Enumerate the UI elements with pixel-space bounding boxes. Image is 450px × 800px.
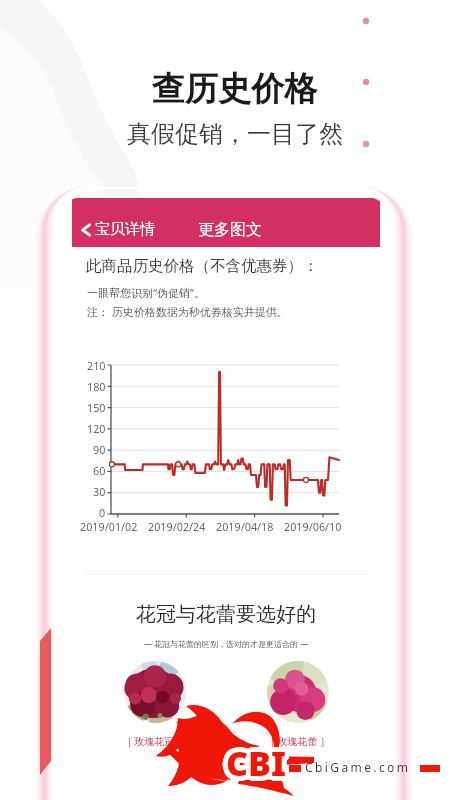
staticText: CBI bbox=[223, 739, 283, 785]
staticText: CBI bbox=[229, 744, 289, 790]
staticText: CBI bbox=[227, 741, 287, 787]
staticText: CBI bbox=[224, 737, 284, 783]
staticText: 0 bbox=[99, 505, 106, 520]
staticText: CBI bbox=[225, 742, 285, 788]
staticText: CBI bbox=[227, 737, 287, 783]
staticText: 更多图文 bbox=[198, 220, 262, 240]
staticText: 210 bbox=[87, 358, 106, 373]
staticText: CBI bbox=[222, 739, 282, 785]
staticText: CBI bbox=[226, 744, 286, 790]
staticText: CBI bbox=[225, 744, 285, 790]
staticText: CBI bbox=[228, 738, 288, 784]
staticText: 2019/04/18 bbox=[216, 519, 274, 534]
staticText: CBI bbox=[228, 741, 288, 787]
staticText: CBI bbox=[222, 743, 282, 789]
staticText: CBI bbox=[224, 736, 284, 782]
staticText: CBI bbox=[222, 742, 282, 788]
staticText: CBI bbox=[229, 737, 289, 783]
staticText: CBI bbox=[225, 739, 285, 785]
staticText: CBI bbox=[229, 738, 289, 784]
staticText: CBI bbox=[228, 742, 288, 788]
staticText: 2019/06/10 bbox=[284, 519, 342, 534]
staticText: ［ 玫瑰花冠 ］ bbox=[122, 734, 188, 748]
staticText: CBI bbox=[230, 742, 290, 788]
staticText: CBI bbox=[225, 737, 285, 783]
staticText: CBI bbox=[230, 743, 290, 789]
staticText: CBI bbox=[226, 738, 286, 784]
staticText: CBI bbox=[229, 743, 289, 789]
staticText: CBI bbox=[228, 737, 288, 783]
staticText: CBI bbox=[230, 738, 290, 784]
staticText: 2019/02/24 bbox=[148, 519, 206, 534]
staticText: CbiGame.com bbox=[305, 759, 411, 775]
staticText: CBI bbox=[226, 742, 286, 788]
staticText: 查历史价格 bbox=[152, 68, 317, 110]
staticText: CBI bbox=[223, 743, 283, 789]
staticText: 30 bbox=[93, 484, 106, 499]
staticText: CBI bbox=[226, 735, 286, 781]
staticText: CBI bbox=[224, 739, 284, 785]
staticText: CBI bbox=[230, 737, 290, 783]
staticText: 150 bbox=[87, 400, 106, 415]
staticText: ［ 玫瑰花蕾 ］ bbox=[265, 734, 331, 748]
staticText: CBI bbox=[225, 738, 285, 784]
other: Back bbox=[79, 223, 93, 237]
button[interactable]: Back bbox=[72, 212, 380, 247]
staticText: CBI bbox=[226, 737, 286, 783]
staticText: 真假促销，一目了然 bbox=[127, 119, 343, 149]
staticText: CBI bbox=[223, 744, 283, 790]
staticText: CBI bbox=[226, 743, 286, 789]
staticText: CBI bbox=[230, 739, 290, 785]
staticText: CBI bbox=[223, 736, 283, 782]
staticText: 此商品历史价格（不含优惠券）： bbox=[86, 256, 319, 276]
staticText: CBI bbox=[227, 739, 287, 785]
staticText: CBI bbox=[227, 738, 287, 784]
staticText: CBI bbox=[222, 741, 282, 787]
staticText: CBI bbox=[224, 743, 284, 789]
staticText: 120 bbox=[87, 421, 106, 436]
staticText: CBI bbox=[229, 742, 289, 788]
staticText: CBI bbox=[222, 737, 282, 783]
staticText: 一眼帮您识别“伪促销”。 bbox=[87, 285, 205, 300]
staticText: CBI bbox=[223, 740, 283, 786]
staticText: CBI bbox=[225, 743, 285, 789]
staticText: CBI bbox=[227, 742, 287, 788]
staticText: CBI bbox=[228, 744, 288, 790]
staticText: CBI bbox=[223, 738, 283, 784]
staticText: CBI bbox=[227, 736, 287, 782]
staticText: CBI bbox=[227, 743, 287, 789]
staticText: 宝贝详情 bbox=[95, 220, 155, 239]
staticText: CBI bbox=[223, 737, 283, 783]
staticText: 180 bbox=[87, 379, 106, 394]
staticText: 花冠与花蕾要选好的 bbox=[136, 602, 316, 627]
staticText: CBI bbox=[222, 740, 282, 786]
staticText: CBI bbox=[229, 741, 289, 787]
staticText: CBI bbox=[228, 740, 288, 786]
staticText: 注： 历史价格数据为秒优券核实并提供。 bbox=[87, 304, 288, 319]
staticText: CBI bbox=[230, 741, 290, 787]
staticText: CBI bbox=[224, 742, 284, 788]
staticText: CBI bbox=[229, 736, 289, 782]
staticText: CBI bbox=[226, 745, 286, 791]
staticText: 2019/01/02 bbox=[80, 519, 138, 534]
staticText: CBI bbox=[229, 740, 289, 786]
staticText: CBI bbox=[225, 736, 285, 782]
staticText: — 花冠与花蕾的区别，选对的才是更适合的 — bbox=[144, 638, 309, 649]
staticText: CBI bbox=[230, 740, 290, 786]
staticText: CBI bbox=[226, 736, 286, 782]
staticText: CBI bbox=[221, 740, 281, 786]
staticText: CBI bbox=[225, 740, 285, 786]
staticText: CBI bbox=[224, 738, 284, 784]
staticText: CBI bbox=[224, 741, 284, 787]
staticText: CBI bbox=[224, 740, 284, 786]
staticText: CBI bbox=[228, 739, 288, 785]
staticText: CBI bbox=[222, 738, 282, 784]
staticText: CBI bbox=[229, 739, 289, 785]
staticText: CBI bbox=[227, 740, 287, 786]
staticText: CBI bbox=[226, 740, 286, 786]
staticText: CBI bbox=[225, 741, 285, 787]
staticText: CBI bbox=[226, 741, 286, 787]
staticText: CBI bbox=[223, 742, 283, 788]
staticText: CBI bbox=[226, 739, 286, 785]
staticText: CBI bbox=[227, 744, 287, 790]
